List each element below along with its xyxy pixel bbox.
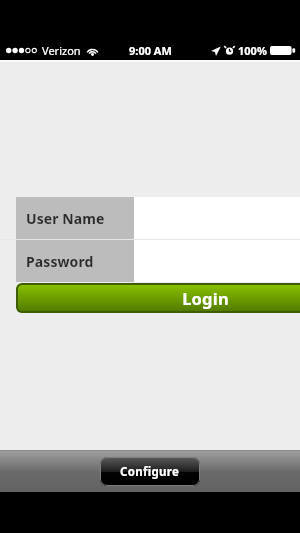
- button[interactable]: Configure: [100, 457, 200, 486]
- staticText: Password: [26, 252, 94, 271]
- button[interactable]: Password: [0, 240, 300, 282]
- button[interactable]: Login: [16, 283, 300, 313]
- other: Alarm set: [225, 46, 234, 55]
- staticText: 9:00 AM: [129, 43, 172, 58]
- other: Wi-Fi: [86, 46, 99, 56]
- button[interactable]: User Name: [0, 197, 300, 239]
- staticText: Login: [182, 287, 229, 309]
- other: Location services: [211, 46, 221, 56]
- staticText: User Name: [26, 209, 105, 228]
- other: Battery full: [270, 46, 296, 55]
- staticText: Verizon: [42, 43, 81, 58]
- staticText: Configure: [120, 464, 180, 480]
- staticText: 100%: [238, 43, 267, 58]
- other: Signal strength: [6, 46, 37, 55]
